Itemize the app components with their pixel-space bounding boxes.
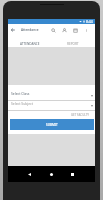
staticText: GET FACULTY xyxy=(71,113,89,117)
button[interactable]: SUBMIT xyxy=(10,119,94,130)
button[interactable]: Back xyxy=(24,169,34,179)
button[interactable]: Calendar xyxy=(70,24,81,36)
button[interactable]: Recent apps xyxy=(67,169,77,179)
button[interactable]: Account xyxy=(59,24,70,36)
staticText: SUBMIT xyxy=(46,123,58,127)
staticText: Select Subject xyxy=(11,101,33,106)
button[interactable]: ATTENDANCE xyxy=(8,36,51,47)
button[interactable]: Search xyxy=(48,24,59,36)
staticText: REPORT xyxy=(67,42,79,46)
button[interactable]: Back xyxy=(8,24,18,36)
button[interactable]: More options xyxy=(81,24,92,36)
button[interactable]: Select Class xyxy=(8,85,95,101)
button[interactable]: REPORT xyxy=(51,36,95,47)
staticText: Select Class xyxy=(11,91,30,96)
button[interactable]: Select Subject xyxy=(8,101,95,111)
staticText: ATTENDANCE xyxy=(20,42,40,46)
staticText: 8:44 xyxy=(86,19,93,24)
staticText: Attendance xyxy=(21,28,39,32)
button[interactable]: Home xyxy=(46,169,56,179)
